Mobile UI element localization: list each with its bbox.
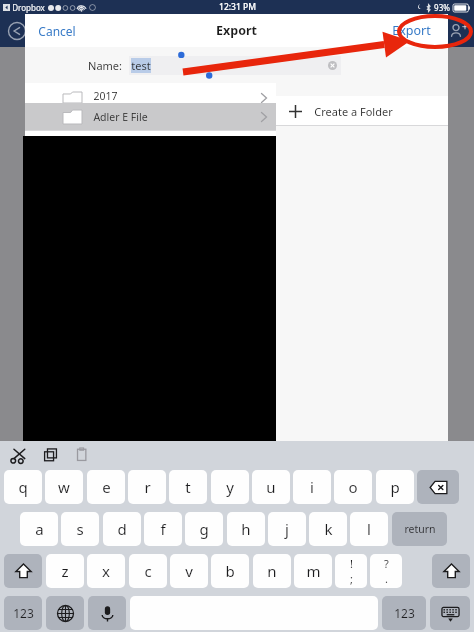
staticText: x [102, 561, 110, 581]
staticText: s [76, 519, 84, 539]
button[interactable]: t [169, 470, 207, 504]
staticText: q [18, 477, 28, 497]
button[interactable]: g [185, 512, 223, 546]
button[interactable]: m [294, 554, 332, 588]
button[interactable]: k [309, 512, 347, 546]
staticText: a [35, 519, 44, 539]
staticText: ? [384, 556, 389, 571]
button[interactable]: h [227, 512, 265, 546]
button[interactable]: Export [387, 18, 436, 43]
staticText: test [131, 58, 151, 73]
button[interactable]: Back [7, 21, 27, 41]
staticText: l [367, 519, 371, 539]
staticText: n [267, 561, 277, 581]
button[interactable]: Add person [448, 21, 468, 41]
button[interactable]: s [61, 512, 99, 546]
button[interactable]: Dictate [88, 596, 126, 630]
staticText: w [58, 477, 70, 497]
button[interactable]: l [350, 512, 388, 546]
button[interactable]: q [4, 470, 42, 504]
staticText: u [266, 477, 276, 497]
button[interactable]: a [20, 512, 58, 546]
staticText: f [160, 519, 166, 539]
button[interactable]: Backspace [417, 470, 459, 504]
button[interactable]: Paste [74, 447, 90, 463]
button[interactable]: x [87, 554, 125, 588]
staticText: Adler E File [93, 110, 148, 124]
button[interactable]: Change keyboard [46, 596, 84, 630]
button[interactable]: Hide keyboard [430, 596, 470, 630]
staticText: 123 [13, 605, 34, 621]
staticText: y [226, 477, 234, 497]
button[interactable]: Create a Folder [276, 96, 448, 126]
button[interactable]: w [45, 470, 83, 504]
button[interactable]: p [376, 470, 414, 504]
staticText: h [241, 519, 251, 539]
button[interactable]: i [293, 470, 331, 504]
staticText: ! [350, 556, 353, 571]
staticText: 123 [394, 605, 415, 621]
button[interactable]: Clear text [328, 61, 337, 70]
button[interactable]: n [253, 554, 291, 588]
staticText: d [117, 519, 127, 539]
button[interactable]: Shift [4, 554, 42, 588]
button[interactable]: Adler E File [25, 103, 276, 130]
button[interactable]: y [211, 470, 249, 504]
button[interactable]: v [170, 554, 208, 588]
staticText: . [385, 571, 388, 586]
staticText: Cancel [38, 23, 76, 39]
staticText: m [306, 561, 321, 581]
button[interactable]: j [268, 512, 306, 546]
button[interactable]: r [128, 470, 166, 504]
staticText: b [225, 561, 235, 581]
staticText: ; [350, 571, 353, 586]
staticText: j [285, 519, 289, 539]
staticText: 2017 [93, 89, 118, 103]
staticText: r [144, 477, 151, 497]
button[interactable]: z [46, 554, 84, 588]
button[interactable]: c [129, 554, 167, 588]
button[interactable]: return [392, 512, 447, 546]
button[interactable]: Copy [43, 447, 59, 463]
staticText: k [324, 519, 333, 539]
button[interactable]: f [144, 512, 182, 546]
button[interactable]: ? [370, 554, 402, 588]
button[interactable]: Cut [10, 446, 28, 464]
button[interactable]: 2017 [25, 83, 276, 103]
staticText: p [390, 477, 400, 497]
button[interactable]: b [211, 554, 249, 588]
staticText: z [61, 561, 69, 581]
button[interactable]: test [129, 56, 341, 75]
staticText: v [185, 561, 193, 581]
button[interactable]: Shift [432, 554, 470, 588]
staticText: Export [392, 22, 431, 39]
button[interactable]: 123 [382, 596, 426, 630]
staticText: 93% [434, 2, 450, 13]
staticText: g [199, 519, 209, 539]
staticText: o [348, 477, 358, 497]
staticText: i [310, 477, 314, 497]
staticText: Export [216, 22, 257, 39]
button[interactable]: Cancel [33, 19, 81, 43]
button[interactable]: d [103, 512, 141, 546]
button[interactable]: o [334, 470, 372, 504]
staticText: Dropbox [12, 2, 45, 13]
button[interactable]: e [87, 470, 125, 504]
button[interactable]: 123 [4, 596, 42, 630]
staticText: Name: [88, 58, 122, 73]
staticText: return [404, 522, 436, 536]
staticText: c [144, 561, 152, 581]
staticText: 12:31 PM [219, 1, 256, 13]
button[interactable]: ! [335, 554, 367, 588]
staticText: t [185, 477, 191, 497]
staticText: Create a Folder [314, 104, 393, 119]
button[interactable]: u [252, 470, 290, 504]
staticText: e [102, 477, 111, 497]
